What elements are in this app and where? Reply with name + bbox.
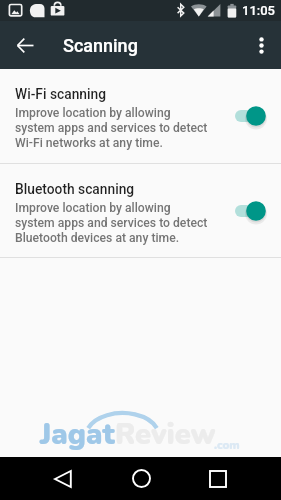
staticText: Wi-Fi scanning: [15, 86, 107, 102]
staticText: Review: [115, 415, 216, 455]
staticText: .com: [214, 437, 240, 453]
staticText: Improve location by allowing system apps…: [15, 201, 208, 245]
staticText: 11:05: [242, 3, 275, 18]
button[interactable]: Recent apps: [196, 457, 240, 500]
staticText: Jagat: [40, 415, 115, 455]
button[interactable]: More options: [244, 28, 278, 62]
button[interactable]: Back: [41, 457, 85, 500]
staticText: Bluetooth scanning: [15, 181, 135, 197]
button[interactable]: Home: [119, 457, 163, 500]
button[interactable]: Navigate up: [8, 28, 42, 62]
staticText: Scanning: [63, 35, 138, 56]
button[interactable]: Wi-Fi scanning: [0, 69, 281, 163]
button[interactable]: Toggle: [235, 193, 271, 229]
button[interactable]: Bluetooth scanning: [0, 164, 281, 257]
staticText: Improve location by allowing system apps…: [15, 106, 208, 150]
button[interactable]: Toggle: [235, 98, 271, 134]
